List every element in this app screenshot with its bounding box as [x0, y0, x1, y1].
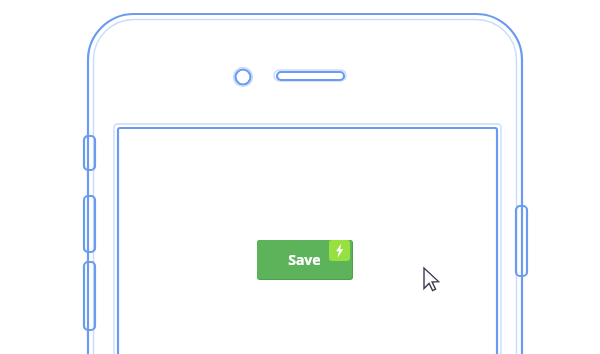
staticText: Save — [288, 250, 321, 269]
button[interactable]: Save — [257, 240, 353, 280]
other: Quick save — [329, 240, 350, 261]
